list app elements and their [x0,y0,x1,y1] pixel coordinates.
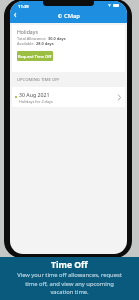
staticText: View your time off allowances, request t… [16,271,123,295]
staticText: Holidays [17,28,38,35]
staticText: Time Off [51,259,88,271]
button[interactable]: Back [10,9,21,21]
staticText: Request Time Off [18,54,52,59]
staticText: 28.0 days [36,41,54,46]
button[interactable]: Request Time Off [17,51,53,61]
staticText: UPCOMING TIME OFF [17,77,60,83]
staticText: 11:39 [18,4,29,10]
staticText: Total Allowance: [17,36,48,41]
staticText: CMap [64,12,80,20]
staticText: 30 Aug 2021 [19,91,50,98]
staticText: 30.0 days [48,36,66,41]
button[interactable]: 30 Aug 2021 [12,87,125,107]
staticText: Available: [17,41,36,46]
staticText: Holidays for 2 days [19,99,53,104]
